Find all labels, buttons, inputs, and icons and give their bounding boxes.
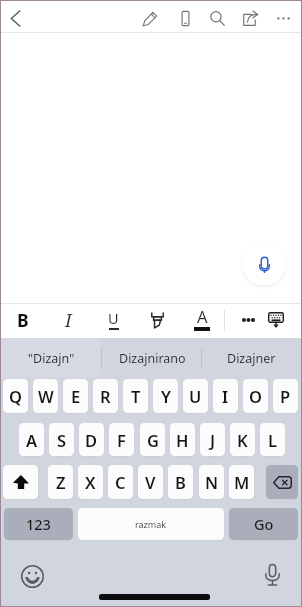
button[interactable]: G bbox=[140, 423, 165, 456]
staticText: H bbox=[176, 429, 189, 451]
staticText: A bbox=[197, 305, 208, 327]
button[interactable]: T bbox=[123, 379, 148, 413]
button[interactable]: Y bbox=[153, 379, 178, 413]
button[interactable]: Space bbox=[78, 508, 224, 540]
staticText: N bbox=[205, 471, 219, 493]
button[interactable]: Backspace bbox=[266, 465, 298, 499]
staticText: B bbox=[175, 471, 186, 493]
button[interactable]: Shift bbox=[3, 465, 38, 499]
button[interactable]: F bbox=[109, 423, 134, 456]
button[interactable]: J bbox=[200, 423, 225, 456]
button[interactable]: I bbox=[213, 379, 238, 413]
button[interactable]: Bold bbox=[6, 305, 40, 335]
button[interactable]: C bbox=[108, 465, 133, 499]
button[interactable]: "Dizajn" bbox=[1, 338, 101, 378]
button[interactable]: Back bbox=[1, 4, 29, 32]
button[interactable]: Dizajner bbox=[203, 338, 300, 378]
staticText: Dizajner bbox=[227, 350, 276, 367]
staticText: W bbox=[38, 385, 54, 407]
button[interactable]: More options bbox=[269, 4, 297, 32]
staticText: K bbox=[237, 429, 248, 451]
staticText: E bbox=[71, 385, 81, 407]
button[interactable]: V bbox=[138, 465, 163, 499]
staticText: R bbox=[100, 385, 111, 407]
staticText: 123 bbox=[26, 514, 51, 534]
button[interactable]: E bbox=[63, 379, 88, 413]
staticText: G bbox=[147, 429, 159, 451]
staticText: Y bbox=[161, 385, 171, 407]
staticText: O bbox=[249, 385, 262, 407]
button[interactable]: Q bbox=[3, 379, 28, 413]
button[interactable]: S bbox=[49, 423, 74, 456]
button[interactable]: N bbox=[199, 465, 224, 499]
staticText: V bbox=[145, 471, 156, 493]
staticText: U bbox=[189, 385, 202, 407]
button[interactable]: M bbox=[229, 465, 254, 499]
staticText: M bbox=[234, 471, 250, 493]
staticText: P bbox=[280, 385, 291, 407]
button[interactable]: Emoji bbox=[18, 562, 46, 590]
button[interactable]: Search bbox=[203, 4, 231, 32]
staticText: A bbox=[26, 429, 38, 451]
button[interactable]: Underline bbox=[96, 305, 130, 335]
button[interactable]: U bbox=[183, 379, 208, 413]
button[interactable]: Numbers and symbols bbox=[4, 508, 73, 540]
staticText: I bbox=[222, 385, 229, 407]
button[interactable]: K bbox=[230, 423, 255, 456]
staticText: I bbox=[65, 308, 72, 333]
staticText: Go bbox=[254, 514, 274, 534]
staticText: U bbox=[108, 308, 119, 328]
button[interactable]: Edit bbox=[136, 4, 164, 32]
button[interactable]: Phone layout bbox=[171, 4, 199, 32]
staticText: X bbox=[85, 471, 96, 493]
staticText: D bbox=[85, 429, 98, 451]
staticText: C bbox=[115, 471, 126, 493]
staticText: L bbox=[268, 429, 278, 451]
button[interactable]: X bbox=[78, 465, 103, 499]
staticText: T bbox=[131, 385, 141, 407]
button[interactable]: Z bbox=[48, 465, 73, 499]
staticText: J bbox=[210, 429, 216, 451]
button[interactable]: Dictate bbox=[242, 242, 286, 286]
staticText: Z bbox=[56, 471, 66, 493]
button[interactable]: O bbox=[243, 379, 268, 413]
button[interactable]: Voice typing bbox=[258, 561, 286, 589]
button[interactable]: Hide keyboard bbox=[259, 305, 293, 335]
button[interactable]: L bbox=[260, 423, 285, 456]
button[interactable]: H bbox=[170, 423, 195, 456]
button[interactable]: P bbox=[273, 379, 298, 413]
staticText: B bbox=[17, 308, 29, 332]
staticText: Dizajnirano bbox=[119, 350, 186, 367]
button[interactable]: D bbox=[79, 423, 104, 456]
button[interactable]: B bbox=[168, 465, 193, 499]
staticText: F bbox=[117, 429, 126, 451]
staticText: "Dizajn" bbox=[28, 350, 75, 367]
button[interactable]: W bbox=[33, 379, 58, 413]
button[interactable]: R bbox=[93, 379, 118, 413]
button[interactable]: Go bbox=[229, 508, 298, 540]
button[interactable]: Highlight bbox=[140, 305, 174, 335]
button[interactable]: More formatting options bbox=[231, 305, 265, 335]
staticText: Q bbox=[9, 385, 22, 407]
button[interactable]: Dizajnirano bbox=[102, 338, 202, 378]
button[interactable]: Font color bbox=[185, 305, 219, 335]
button[interactable]: Share bbox=[236, 4, 264, 32]
button[interactable]: Italic bbox=[51, 305, 85, 335]
staticText: razmak bbox=[135, 518, 167, 530]
staticText: S bbox=[57, 429, 67, 451]
button[interactable]: A bbox=[19, 423, 44, 456]
